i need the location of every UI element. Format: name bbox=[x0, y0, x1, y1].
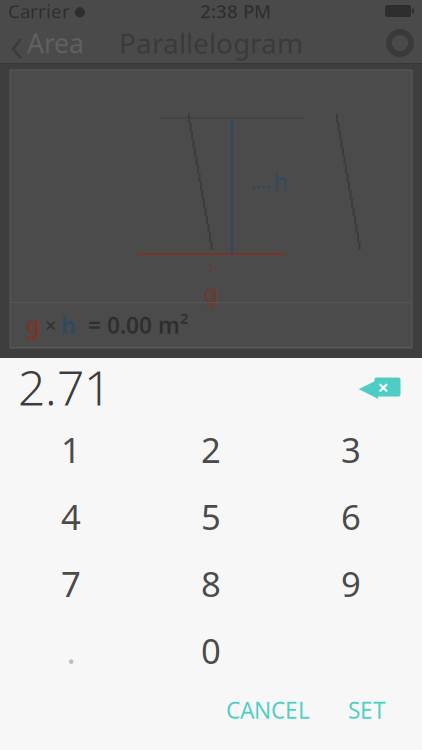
staticText: . bbox=[66, 627, 75, 673]
button[interactable]: 7 bbox=[1, 550, 141, 617]
button[interactable]: 0 bbox=[141, 617, 281, 684]
button[interactable]: CANCEL bbox=[216, 687, 320, 733]
button[interactable]: 1 bbox=[1, 416, 141, 483]
staticText: SET bbox=[348, 695, 386, 725]
staticText: g bbox=[204, 278, 218, 308]
staticText: 7 bbox=[61, 560, 81, 606]
staticText: = 0.00 m bbox=[76, 310, 180, 340]
button[interactable]: ‹ bbox=[0, 22, 94, 64]
staticText: 0 bbox=[201, 627, 221, 673]
button[interactable]: 6 bbox=[281, 483, 421, 550]
staticText: 8 bbox=[201, 560, 221, 606]
staticText: Carrier bbox=[8, 0, 70, 23]
button[interactable]: 3 bbox=[281, 416, 421, 483]
staticText: 3 bbox=[341, 426, 361, 472]
staticText: 4 bbox=[61, 493, 81, 539]
button[interactable]: Delete bbox=[348, 367, 408, 407]
staticText: 2 bbox=[180, 308, 188, 328]
staticText: 1 bbox=[61, 426, 81, 472]
button[interactable]: 2 bbox=[141, 416, 281, 483]
staticText: h bbox=[273, 167, 287, 197]
button[interactable]: SET bbox=[338, 687, 396, 733]
staticText: × bbox=[377, 374, 388, 400]
staticText: .... bbox=[250, 170, 270, 193]
staticText: 6 bbox=[341, 493, 361, 539]
staticText: ‹ bbox=[10, 9, 23, 77]
button[interactable]: 8 bbox=[141, 550, 281, 617]
button[interactable]: 5 bbox=[141, 483, 281, 550]
staticText: h bbox=[61, 310, 76, 340]
staticText: Area bbox=[27, 25, 84, 61]
button[interactable]: Settings bbox=[378, 22, 422, 64]
button[interactable]: 4 bbox=[1, 483, 141, 550]
staticText: ● bbox=[74, 3, 86, 18]
staticText: 2.71 bbox=[18, 355, 111, 419]
staticText: ◀ bbox=[358, 373, 377, 401]
staticText: 9 bbox=[341, 560, 361, 606]
staticText: CANCEL bbox=[226, 695, 310, 725]
staticText: g bbox=[26, 310, 40, 340]
staticText: 2 bbox=[201, 426, 221, 472]
staticText: 5 bbox=[201, 493, 221, 539]
staticText: : bbox=[209, 256, 213, 277]
staticText: 2:38 PM bbox=[200, 0, 271, 23]
staticText: × bbox=[40, 312, 61, 338]
button[interactable]: 9 bbox=[281, 550, 421, 617]
staticText: Parallelogram bbox=[119, 24, 303, 62]
